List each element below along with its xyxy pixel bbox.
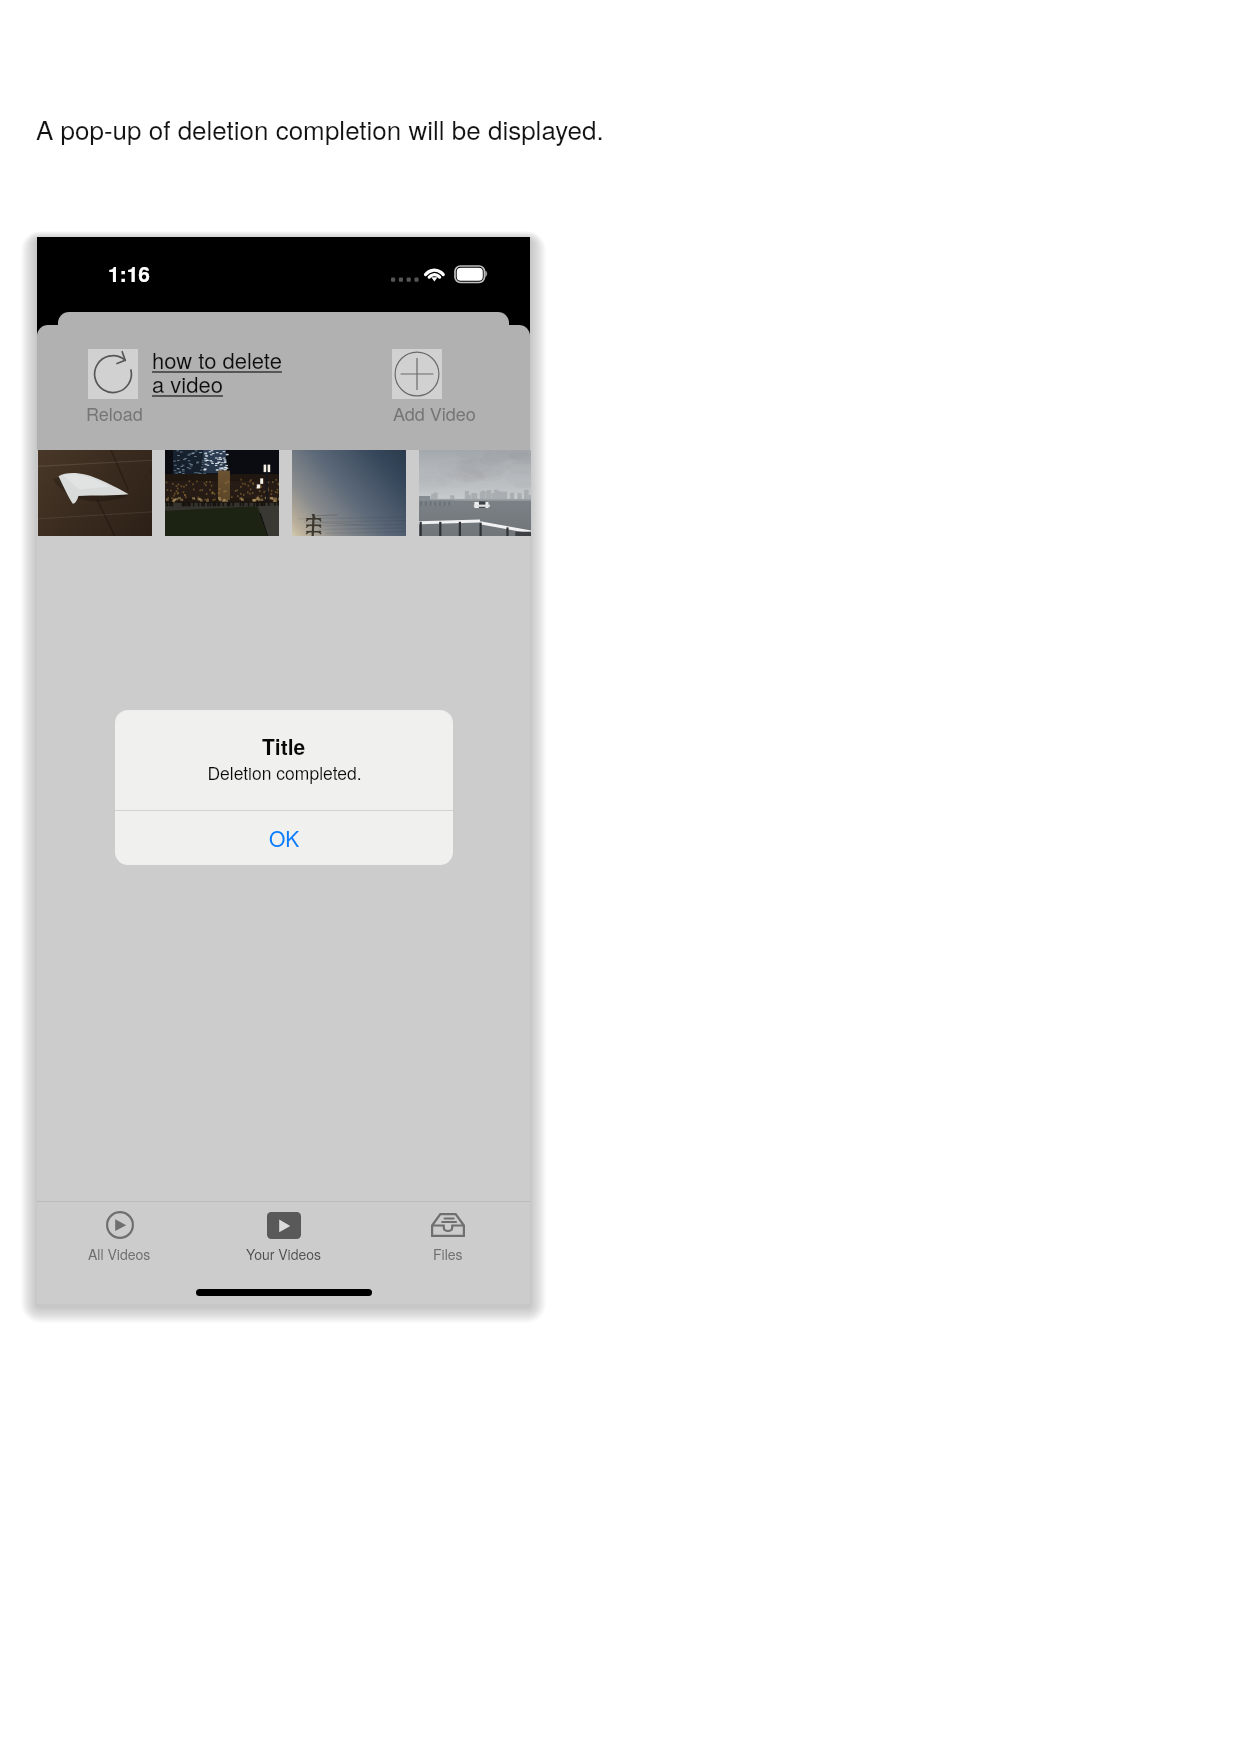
staticText: Your Videos: [246, 1244, 322, 1264]
button[interactable]: All Videos: [37, 1201, 202, 1304]
button[interactable]: OK: [115, 811, 453, 865]
staticText: Title: [262, 731, 306, 761]
button[interactable]: Video thumbnail 1: [38, 450, 152, 536]
staticText: A pop-up of deletion completion will be …: [36, 110, 604, 147]
other: Add Video: [394, 351, 440, 397]
staticText: how to delete: [152, 344, 282, 376]
button[interactable]: Reload: [88, 349, 146, 450]
button[interactable]: how to delete: [152, 344, 286, 400]
staticText: 1:16: [108, 258, 151, 288]
button[interactable]: Video thumbnail 4: [419, 450, 531, 536]
staticText: All Videos: [88, 1244, 151, 1264]
staticText: a video: [152, 368, 223, 400]
other: Reload: [91, 352, 135, 396]
staticText: Reload: [86, 400, 143, 426]
button[interactable]: Your Videos: [202, 1201, 366, 1304]
staticText: Add Video: [393, 400, 476, 426]
button[interactable]: Video thumbnail 2: [165, 450, 279, 536]
button[interactable]: Add Video: [392, 349, 476, 445]
button[interactable]: Files: [366, 1201, 530, 1304]
staticText: Files: [433, 1244, 463, 1264]
button[interactable]: Video thumbnail 3: [292, 450, 406, 536]
staticText: OK: [269, 823, 300, 853]
staticText: Deletion completed.: [207, 760, 362, 785]
